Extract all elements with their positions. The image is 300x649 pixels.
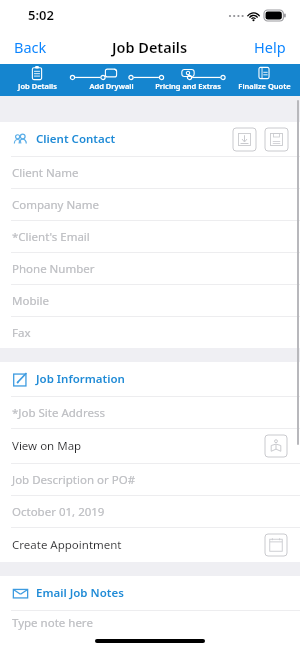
- button[interactable]: *Client's Email: [0, 221, 300, 252]
- button[interactable]: Back: [0, 31, 61, 63]
- staticText: Job Details: [112, 37, 188, 57]
- staticText: Type note here: [12, 615, 93, 631]
- button[interactable]: Create Appointment: [0, 528, 300, 562]
- button[interactable]: Finalize Quote: [228, 64, 300, 96]
- button[interactable]: Type note here: [0, 611, 300, 635]
- button[interactable]: Company Name: [0, 189, 300, 220]
- staticText: Job Details: [18, 81, 57, 91]
- staticText: View on Map: [12, 438, 82, 454]
- button[interactable]: Mobile: [0, 285, 300, 316]
- staticText: Fax: [12, 325, 31, 341]
- button[interactable]: October 01, 2019: [0, 496, 300, 527]
- staticText: Pricing and Extras: [155, 81, 221, 91]
- button[interactable]: Phone Number: [0, 253, 300, 284]
- staticText: Company Name: [12, 197, 99, 213]
- staticText: Mobile: [12, 293, 49, 309]
- button[interactable]: Fax: [0, 317, 300, 348]
- button[interactable]: *Job Site Address: [0, 397, 300, 428]
- button[interactable]: Pricing and Extras: [148, 64, 228, 96]
- staticText: Help: [254, 37, 286, 57]
- button[interactable]: Create Appointment: [264, 533, 288, 557]
- staticText: Client Name: [12, 165, 79, 181]
- staticText: Back: [14, 37, 47, 57]
- button[interactable]: View on Map: [264, 434, 288, 458]
- staticText: Phone Number: [12, 261, 95, 277]
- staticText: *Client's Email: [12, 229, 90, 245]
- button[interactable]: View on Map: [0, 429, 300, 463]
- staticText: *Job Site Address: [12, 405, 105, 421]
- button[interactable]: Job Details: [0, 64, 74, 96]
- button[interactable]: Help: [240, 31, 300, 63]
- staticText: Email Job Notes: [36, 585, 124, 601]
- staticText: Add Drywall: [89, 81, 134, 91]
- staticText: Create Appointment: [12, 537, 122, 553]
- button[interactable]: Client Name: [0, 157, 300, 188]
- staticText: October 01, 2019: [12, 504, 105, 520]
- staticText: Finalize Quote: [238, 81, 291, 91]
- button[interactable]: Import contact: [232, 127, 257, 152]
- staticText: Job Information: [36, 371, 125, 387]
- button[interactable]: Add Drywall: [74, 64, 148, 96]
- staticText: Client Contact: [36, 131, 116, 147]
- button[interactable]: Save contact: [264, 127, 289, 152]
- button[interactable]: Job Description or PO#: [0, 464, 300, 495]
- staticText: Job Description or PO#: [12, 472, 136, 488]
- staticText: 5:02: [28, 6, 54, 24]
